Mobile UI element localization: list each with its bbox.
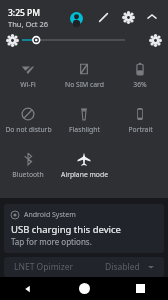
button[interactable]: No SIM card bbox=[56, 55, 112, 100]
button[interactable]: Bluetooth bbox=[0, 145, 56, 190]
staticText: 3:25 PM bbox=[8, 7, 41, 19]
button[interactable]: Recents bbox=[112, 277, 168, 300]
button[interactable]: Settings bbox=[118, 7, 138, 27]
button[interactable]: 36% bbox=[112, 55, 168, 100]
staticText: Thu, Oct 26 bbox=[8, 19, 49, 29]
staticText: Do not disturb bbox=[5, 125, 52, 134]
staticText: 36% bbox=[133, 80, 147, 89]
button[interactable]: Airplane mode bbox=[56, 145, 112, 190]
button[interactable]: Android System bbox=[4, 204, 164, 253]
button[interactable]: Back bbox=[0, 277, 56, 300]
staticText: Bluetooth bbox=[12, 170, 44, 179]
button[interactable]: Portrait bbox=[112, 100, 168, 145]
button[interactable]: Do not disturb bbox=[0, 100, 56, 145]
button[interactable]: Edit bbox=[93, 7, 113, 27]
button[interactable]: Flashlight bbox=[56, 100, 112, 145]
staticText: Flashlight bbox=[69, 125, 100, 134]
staticText: Tap for more options. bbox=[11, 236, 92, 247]
staticText: Disabled bbox=[105, 261, 140, 273]
staticText: No SIM card bbox=[65, 80, 104, 89]
button[interactable]: LNET Opimizer bbox=[4, 257, 164, 277]
staticText: Wi-Fi bbox=[20, 80, 36, 89]
button[interactable]: Wi-Fi bbox=[0, 55, 56, 100]
staticText: Portrait bbox=[128, 125, 153, 134]
staticText: Android System bbox=[24, 210, 76, 220]
button[interactable]: Brightness bbox=[22, 31, 146, 49]
button[interactable]: User bbox=[65, 7, 87, 29]
button[interactable]: Collapse bbox=[142, 7, 162, 27]
staticText: USB charging this device bbox=[11, 223, 121, 236]
staticText: Airplane mode bbox=[61, 170, 108, 179]
staticText: LNET Opimizer bbox=[14, 261, 74, 273]
button[interactable]: Home bbox=[56, 277, 112, 300]
